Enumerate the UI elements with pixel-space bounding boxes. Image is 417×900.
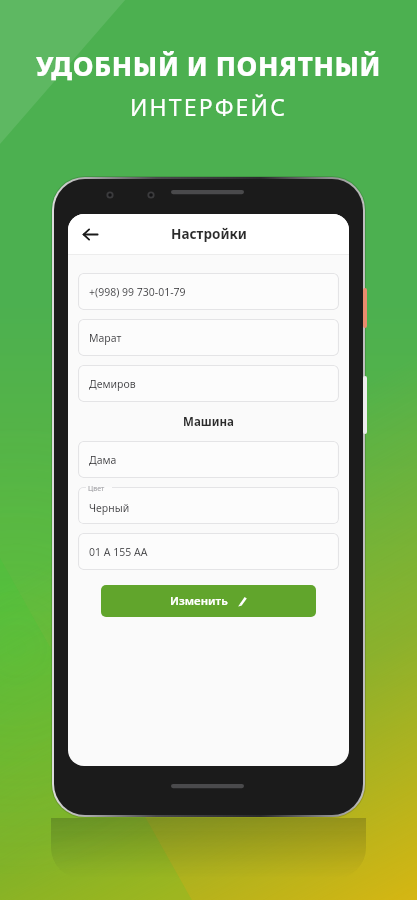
staticText: Настройки — [171, 225, 247, 243]
staticText: Дама — [89, 453, 117, 467]
staticText: Демиров — [89, 377, 136, 391]
staticText: Цвет — [88, 484, 105, 494]
staticText: ИНТЕРФЕЙС — [0, 91, 417, 122]
staticText: УДОБНЫЙ И ПОНЯТНЫЙ — [0, 48, 417, 84]
staticText: +(998) 99 730-01-79 — [89, 285, 186, 299]
staticText: Марат — [89, 331, 122, 345]
staticText: 01 A 155 AA — [89, 545, 148, 559]
button[interactable]: Демиров — [78, 365, 339, 402]
button[interactable]: +(998) 99 730-01-79 — [78, 273, 339, 310]
staticText: Изменить — [170, 593, 228, 609]
staticText: Машина — [78, 414, 339, 430]
button[interactable]: Back — [74, 218, 106, 250]
button[interactable]: Черный — [78, 487, 339, 524]
staticText: Черный — [89, 501, 130, 515]
button[interactable]: Дама — [78, 441, 339, 478]
button[interactable]: 01 A 155 AA — [78, 533, 339, 570]
button[interactable]: Марат — [78, 319, 339, 356]
button[interactable]: Изменить — [101, 585, 316, 617]
